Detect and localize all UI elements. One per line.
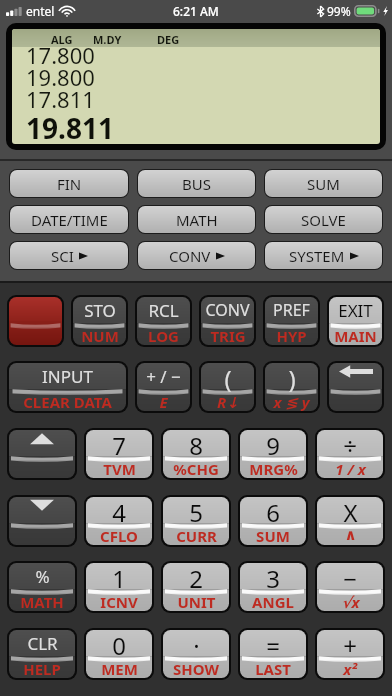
button[interactable]: 9	[240, 430, 306, 478]
button[interactable]: INPUT	[9, 363, 126, 411]
staticText: BUS	[182, 174, 211, 194]
staticText: %CHG	[173, 459, 219, 478]
button[interactable]: Scroll up	[9, 430, 75, 478]
button[interactable]: STO	[73, 297, 126, 345]
staticText: ANGL	[252, 592, 294, 611]
button[interactable]: + / −	[137, 363, 190, 411]
staticText: %	[35, 565, 50, 588]
staticText: R↓	[217, 392, 239, 411]
button[interactable]: +	[317, 630, 383, 678]
staticText: 6	[266, 497, 280, 529]
button[interactable]: ·	[163, 630, 229, 678]
staticText: SCI	[51, 246, 74, 266]
staticText: 9	[266, 430, 280, 462]
staticText: PREF	[273, 299, 310, 321]
staticText: EXIT	[338, 299, 373, 322]
button[interactable]: 6	[240, 497, 306, 545]
button[interactable]: 2	[163, 563, 229, 611]
staticText: (	[224, 363, 232, 395]
staticText: DEG	[157, 32, 180, 47]
staticText: CLEAR DATA	[23, 392, 112, 411]
staticText: LAST	[255, 659, 291, 678]
button[interactable]: 5	[163, 497, 229, 545]
button[interactable]: MATH	[138, 206, 255, 233]
staticText: NUM	[81, 326, 119, 345]
staticText: ÷	[343, 430, 357, 462]
button[interactable]: CLR	[9, 630, 75, 678]
staticText: DATE/TIME	[31, 210, 108, 230]
staticText: TVM	[103, 459, 136, 478]
staticText: HYP	[276, 326, 307, 345]
button[interactable]: 0	[86, 630, 152, 678]
staticText: CONV	[169, 246, 211, 266]
button[interactable]: DATE/TIME	[10, 206, 128, 233]
staticText: 2	[189, 563, 203, 595]
button[interactable]: =	[240, 630, 306, 678]
staticText: MEM	[101, 659, 138, 678]
staticText: 99%	[327, 3, 351, 19]
button[interactable]: 1	[86, 563, 152, 611]
staticText: =	[266, 630, 280, 662]
staticText: ICNV	[100, 592, 138, 611]
button[interactable]: CONV	[138, 242, 255, 269]
staticText: 19.811	[26, 109, 114, 144]
button[interactable]: (	[201, 363, 254, 411]
button[interactable]: FIN	[10, 170, 128, 197]
staticText: MATH	[176, 210, 218, 230]
staticText: 19.800	[26, 62, 95, 92]
button[interactable]: CONV	[201, 297, 254, 345]
staticText: 5	[189, 497, 203, 529]
staticText: 17.800	[26, 40, 95, 70]
button[interactable]: SCI	[10, 242, 128, 269]
staticText: √x	[341, 592, 360, 611]
button[interactable]: 8	[163, 430, 229, 478]
button[interactable]: ÷	[317, 430, 383, 478]
staticText: SOLVE	[301, 210, 346, 230]
button[interactable]: %	[9, 563, 75, 611]
button[interactable]: 3	[240, 563, 306, 611]
staticText: MAIN	[334, 326, 377, 345]
button[interactable]: )	[265, 363, 318, 411]
button[interactable]: SYSTEM	[265, 242, 382, 269]
button[interactable]: Scroll down	[9, 497, 75, 545]
button[interactable]: Backspace	[329, 363, 382, 411]
button[interactable]: Enter	[9, 297, 62, 345]
button[interactable]: BUS	[138, 170, 255, 197]
button[interactable]: −	[317, 563, 383, 611]
staticText: CFLO	[100, 526, 138, 545]
staticText: SHOW	[173, 659, 219, 678]
staticText: entel	[26, 3, 55, 19]
staticText: CLR	[27, 632, 58, 655]
staticText: LOG	[148, 326, 179, 345]
staticText: x ≶ y	[273, 392, 310, 411]
staticText: SUM	[307, 174, 340, 194]
staticText: ·	[193, 630, 200, 662]
staticText: ∧	[344, 526, 357, 543]
staticText: X	[343, 497, 358, 529]
staticText: INPUT	[42, 365, 93, 388]
button[interactable]: EXIT	[329, 297, 382, 345]
button[interactable]: 4	[86, 497, 152, 545]
staticText: SUM	[256, 526, 290, 545]
staticText: 1 / x	[335, 459, 366, 478]
staticText: TRIG	[210, 326, 246, 345]
staticText: MRG%	[249, 459, 298, 478]
staticText: −	[343, 563, 357, 595]
staticText: SYSTEM	[289, 246, 345, 266]
staticText: 6:21 AM	[173, 3, 219, 19]
staticText: 4	[112, 497, 126, 529]
button[interactable]: PREF	[265, 297, 318, 345]
button[interactable]: X	[317, 497, 383, 545]
staticText: 8	[189, 430, 203, 462]
staticText: +	[343, 630, 357, 662]
button[interactable]: 7	[86, 430, 152, 478]
button[interactable]: SOLVE	[265, 206, 382, 233]
staticText: UNIT	[177, 592, 216, 611]
button[interactable]: RCL	[137, 297, 190, 345]
button[interactable]: SUM	[265, 170, 382, 197]
staticText: + / −	[146, 365, 181, 388]
staticText: 1	[112, 563, 126, 595]
staticText: STO	[84, 299, 116, 322]
staticText: 17.811	[26, 84, 95, 114]
staticText: x²	[343, 659, 357, 678]
